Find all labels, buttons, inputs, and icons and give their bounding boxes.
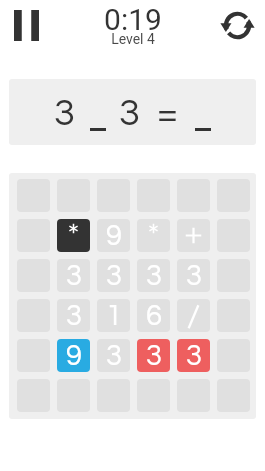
staticText: 3	[66, 301, 82, 331]
button[interactable]: 3	[97, 259, 130, 292]
staticText: 9	[106, 221, 122, 251]
button[interactable]: 3	[57, 259, 90, 292]
button[interactable]: 3	[177, 259, 210, 292]
button[interactable]: 3	[137, 259, 170, 292]
button[interactable]	[57, 219, 90, 252]
button[interactable]: 3	[137, 339, 170, 372]
staticText: 3	[54, 94, 75, 133]
staticText: 1	[106, 301, 122, 331]
staticText: 3	[186, 341, 202, 371]
staticText: 6	[146, 301, 162, 331]
staticText: 0:19	[104, 2, 162, 37]
button[interactable]: 9	[57, 339, 90, 372]
button[interactable]: 6	[137, 299, 170, 332]
button[interactable]	[137, 219, 170, 252]
staticText: 3	[119, 94, 140, 133]
staticText: =	[157, 94, 178, 133]
staticText: 3	[66, 261, 82, 291]
button[interactable]	[177, 219, 210, 252]
staticText: 9	[66, 341, 82, 371]
staticText: 3	[146, 261, 162, 291]
staticText: Level 4	[111, 31, 155, 47]
button[interactable]: 1	[97, 299, 130, 332]
button[interactable]: Pause	[9, 5, 44, 46]
staticText: 3	[106, 261, 122, 291]
button[interactable]: 9	[97, 219, 130, 252]
button[interactable]: 3	[97, 339, 130, 372]
staticText: 3	[186, 261, 202, 291]
button[interactable]	[177, 299, 210, 332]
button[interactable]: 3	[177, 339, 210, 372]
button[interactable]: Restart	[217, 7, 257, 43]
staticText: 3	[146, 341, 162, 371]
button[interactable]: 3	[57, 299, 90, 332]
staticText: 3	[106, 341, 122, 371]
